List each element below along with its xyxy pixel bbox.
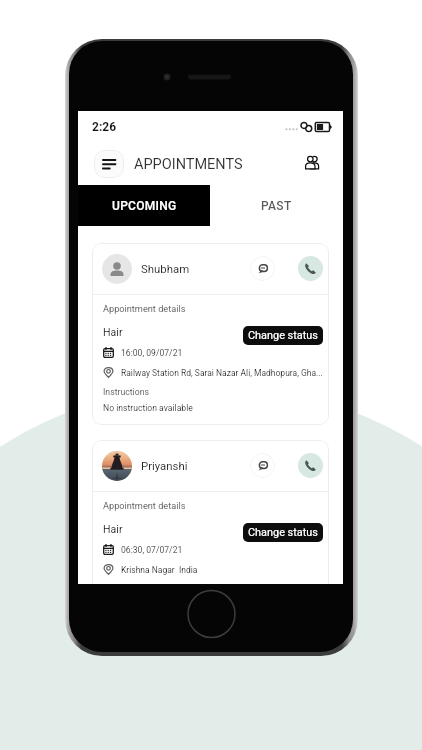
staticText: Hair	[103, 523, 123, 535]
staticText: Krishna Nagar India	[121, 565, 198, 575]
staticText: No instruction available	[103, 403, 193, 413]
button[interactable]: Call	[298, 256, 323, 281]
staticText: Shubham	[141, 262, 190, 275]
staticText: Instructions	[103, 387, 149, 397]
button[interactable]: Call	[298, 453, 323, 478]
staticText: APPOINTMENTS	[134, 156, 243, 173]
staticText: Railway Station Rd, Sarai Nazar Ali, Mad…	[121, 368, 323, 378]
button[interactable]: Change status	[243, 326, 323, 345]
staticText: Change status	[248, 526, 318, 539]
staticText: Appointment details	[103, 303, 186, 314]
staticText: Hair	[103, 326, 123, 338]
staticText: Change status	[248, 329, 318, 342]
staticText: 16:00, 09/07/21	[121, 348, 183, 358]
staticText: UPCOMING	[112, 199, 177, 213]
button[interactable]: Menu	[94, 150, 124, 178]
button[interactable]: Message	[250, 256, 275, 281]
button[interactable]: PAST	[210, 185, 343, 226]
button[interactable]: UPCOMING	[78, 185, 210, 226]
button[interactable]: Message	[250, 453, 275, 478]
staticText: Appointment details	[103, 500, 186, 511]
button[interactable]: Contacts	[299, 149, 325, 175]
button[interactable]: Shubham	[92, 243, 329, 425]
button[interactable]: Priyanshi	[92, 440, 329, 584]
staticText: PAST	[261, 199, 292, 213]
staticText: 2:26	[92, 120, 117, 134]
button[interactable]: Change status	[243, 523, 323, 542]
staticText: Priyanshi	[141, 459, 188, 472]
staticText: 06:30, 07/07/21	[121, 545, 183, 555]
